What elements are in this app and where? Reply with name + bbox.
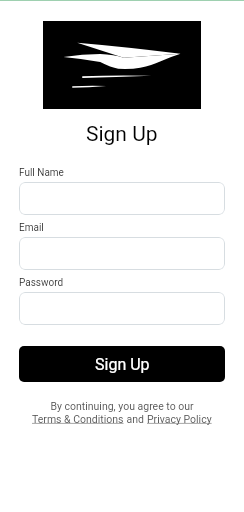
- staticText: By continuing, you agree to our: [19, 400, 225, 412]
- button[interactable]: Terms & Conditions: [32, 413, 124, 425]
- staticText: Full Name: [19, 167, 64, 179]
- button[interactable]: Email: [19, 237, 225, 270]
- staticText: Sign Up: [86, 122, 158, 147]
- staticText: Email: [19, 222, 44, 234]
- button[interactable]: Privacy Policy: [147, 413, 212, 425]
- button[interactable]: Full Name: [19, 182, 225, 215]
- staticText: and: [124, 413, 147, 425]
- button[interactable]: Sign Up: [19, 346, 225, 382]
- staticText: Password: [19, 277, 64, 289]
- staticText: Sign Up: [95, 355, 150, 374]
- button[interactable]: Password: [19, 292, 225, 325]
